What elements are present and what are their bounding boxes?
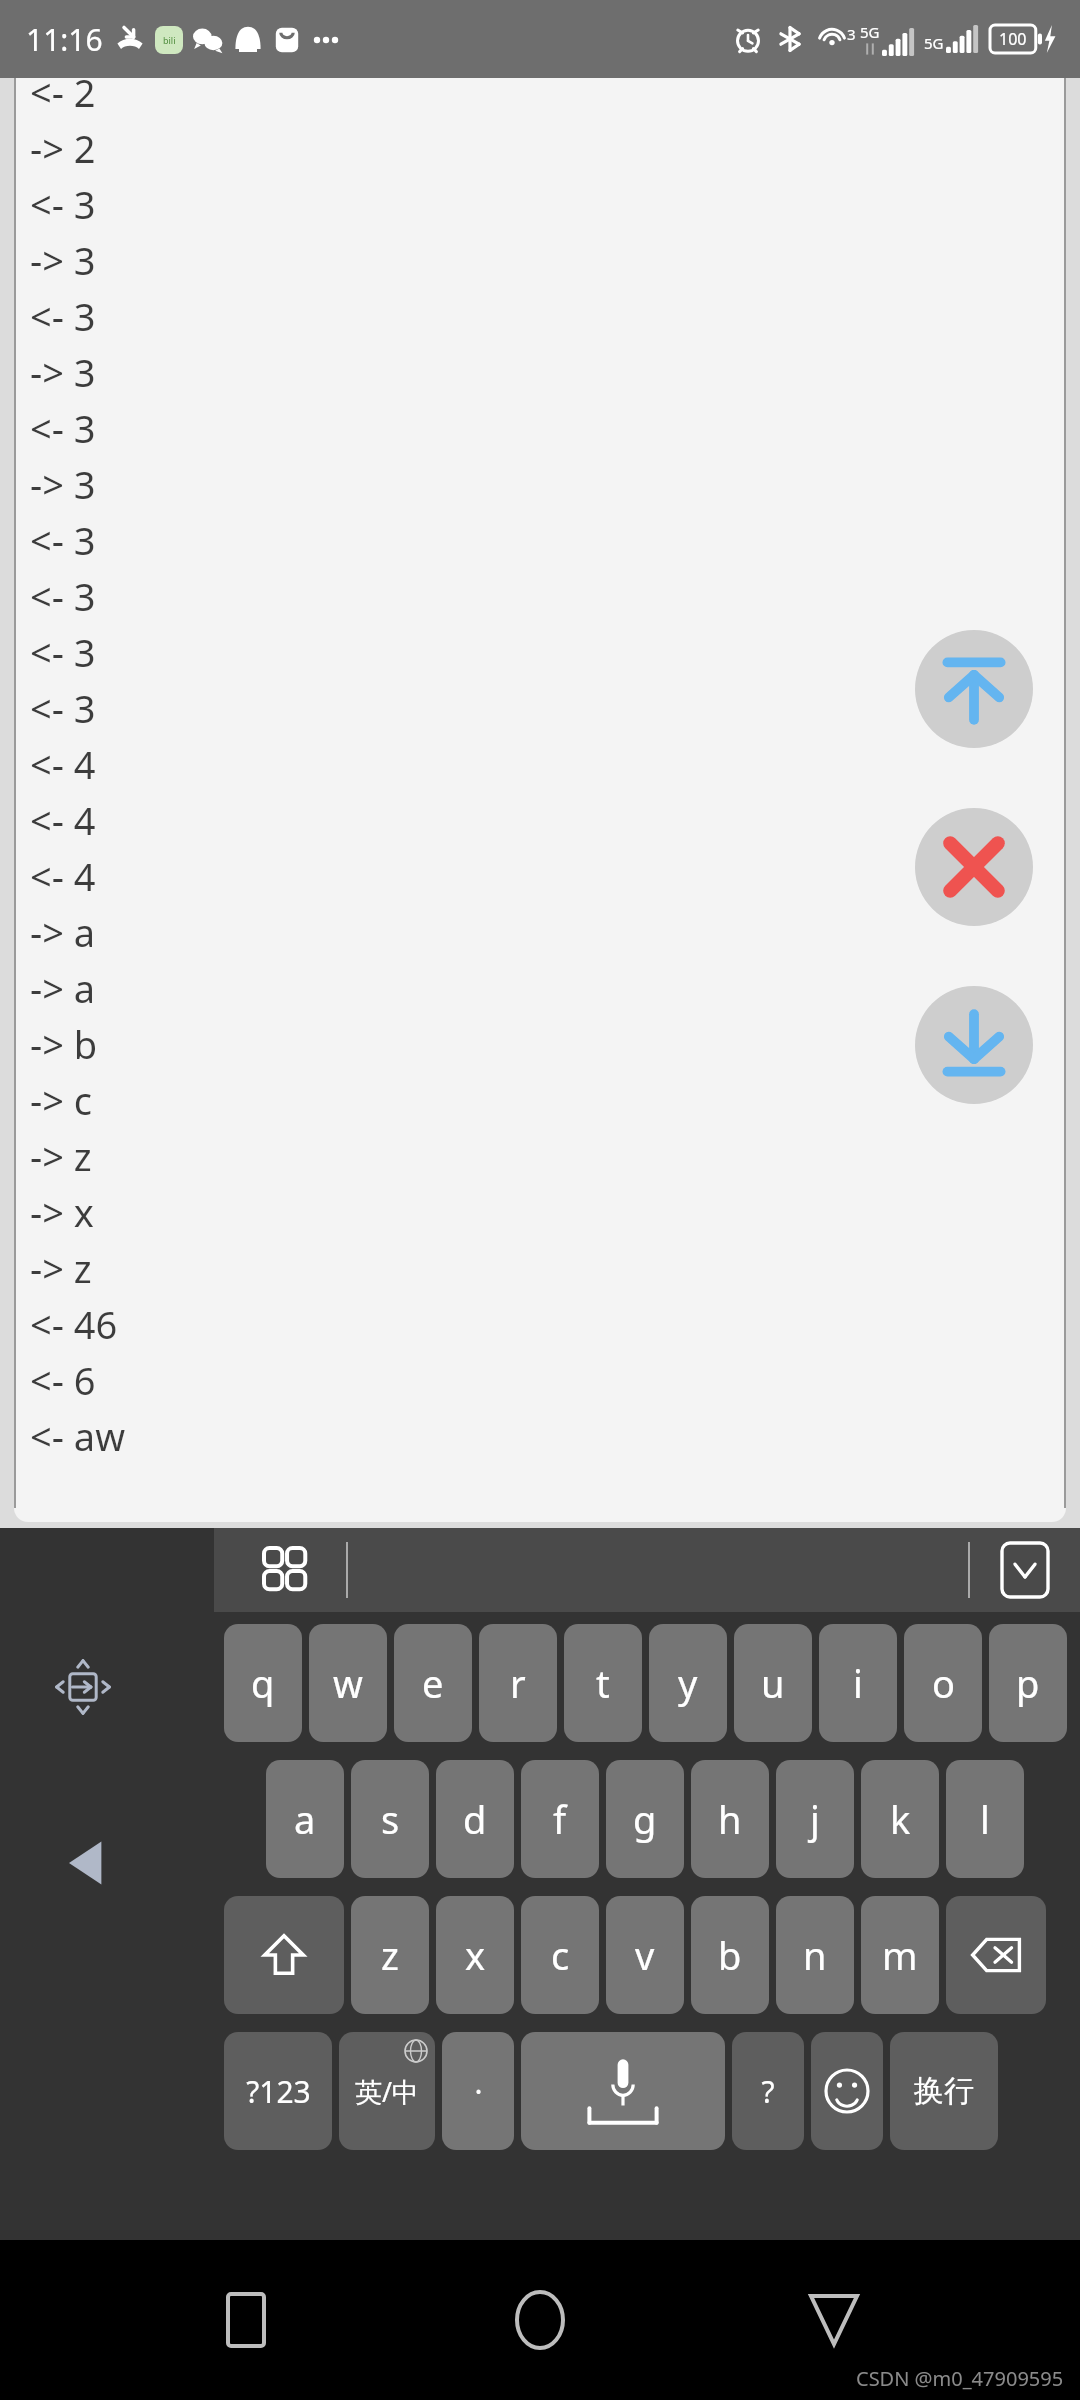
button[interactable]: c xyxy=(521,1896,599,2014)
staticText: 5G xyxy=(860,22,880,42)
staticText: <- 3 xyxy=(30,178,96,230)
staticText: q xyxy=(251,1657,275,1709)
staticText: m xyxy=(882,1929,918,1981)
button[interactable]: d xyxy=(436,1760,514,1878)
staticText: -> z xyxy=(30,1242,92,1294)
button[interactable]: e xyxy=(394,1624,472,1742)
staticText: 5G xyxy=(924,33,944,53)
staticText: <- 46 xyxy=(30,1298,118,1350)
button[interactable]: 换行 xyxy=(890,2032,998,2150)
button[interactable]: f xyxy=(521,1760,599,1878)
button[interactable]: i xyxy=(819,1624,897,1742)
button[interactable]: Shift xyxy=(224,1896,344,2014)
button[interactable]: Previous xyxy=(52,1828,122,1898)
staticText: <- 6 xyxy=(30,1354,96,1406)
staticText: bili xyxy=(163,34,176,46)
staticText: l xyxy=(980,1793,990,1845)
button[interactable]: r xyxy=(479,1624,557,1742)
staticText: d xyxy=(463,1793,487,1845)
button[interactable]: p xyxy=(989,1624,1067,1742)
button[interactable]: b xyxy=(691,1896,769,2014)
staticText: ? xyxy=(761,2071,775,2112)
staticText: a xyxy=(294,1793,316,1845)
button[interactable]: j xyxy=(776,1760,854,1878)
button[interactable]: Move keyboard xyxy=(48,1652,118,1722)
staticText: -> 3 xyxy=(30,458,96,510)
staticText: -> a xyxy=(30,906,96,958)
staticText: r xyxy=(510,1657,526,1709)
button[interactable]: a xyxy=(266,1760,344,1878)
staticText: <- aw xyxy=(30,1410,126,1462)
button[interactable]: Emoji xyxy=(811,2032,883,2150)
staticText: <- 2 xyxy=(30,78,96,118)
button[interactable]: n xyxy=(776,1896,854,2014)
button[interactable]: x xyxy=(436,1896,514,2014)
staticText: n xyxy=(803,1929,827,1981)
staticText: k xyxy=(890,1793,911,1845)
staticText: w xyxy=(333,1657,363,1709)
button[interactable]: z xyxy=(351,1896,429,2014)
staticText: -> c xyxy=(30,1074,93,1126)
button[interactable]: ?123 xyxy=(224,2032,332,2150)
staticText: y xyxy=(678,1657,698,1709)
button[interactable]: l xyxy=(946,1760,1024,1878)
button[interactable]: g xyxy=(606,1760,684,1878)
button[interactable]: Keyboard menu xyxy=(256,1540,316,1600)
button[interactable]: u xyxy=(734,1624,812,1742)
staticText: -> 3 xyxy=(30,346,96,398)
button[interactable]: y xyxy=(649,1624,727,1742)
button[interactable]: o xyxy=(904,1624,982,1742)
button[interactable]: Scroll to top xyxy=(915,630,1033,748)
staticText: 100 xyxy=(999,28,1027,50)
button[interactable]: t xyxy=(564,1624,642,1742)
staticText: <- 4 xyxy=(30,850,96,902)
staticText: -> a xyxy=(30,962,96,1014)
staticText: <- 4 xyxy=(30,738,96,790)
staticText: i xyxy=(853,1657,863,1709)
button[interactable]: Backspace xyxy=(946,1896,1046,2014)
staticText: 英/中 xyxy=(355,2073,420,2110)
staticText: · xyxy=(474,2071,483,2112)
button[interactable]: Recents xyxy=(198,2272,294,2368)
button[interactable]: v xyxy=(606,1896,684,2014)
staticText: <- 4 xyxy=(30,794,96,846)
staticText: x xyxy=(465,1929,486,1981)
staticText: 11:16 xyxy=(26,19,103,60)
staticText: -> x xyxy=(30,1186,94,1238)
button[interactable]: Home xyxy=(492,2272,588,2368)
staticText: g xyxy=(633,1793,657,1845)
staticText: <- 3 xyxy=(30,570,96,622)
button[interactable]: Scroll to bottom xyxy=(915,986,1033,1104)
staticText: u xyxy=(761,1657,785,1709)
staticText: o xyxy=(932,1657,955,1709)
button[interactable]: 英/中 xyxy=(339,2032,435,2150)
staticText: s xyxy=(381,1793,400,1845)
button[interactable]: Space xyxy=(521,2032,725,2150)
button[interactable]: Clear log xyxy=(915,808,1033,926)
staticText: t xyxy=(596,1657,610,1709)
staticText: CSDN @m0_47909595 xyxy=(856,2365,1064,2392)
staticText: -> 3 xyxy=(30,234,96,286)
staticText: f xyxy=(553,1793,567,1845)
button[interactable]: · xyxy=(442,2032,514,2150)
staticText: -> 2 xyxy=(30,122,96,174)
staticText: <- 3 xyxy=(30,626,96,678)
button[interactable]: s xyxy=(351,1760,429,1878)
button[interactable]: m xyxy=(861,1896,939,2014)
button[interactable]: k xyxy=(861,1760,939,1878)
staticText: -> b xyxy=(30,1018,98,1070)
staticText: p xyxy=(1016,1657,1040,1709)
button[interactable]: Back xyxy=(786,2272,882,2368)
staticText: <- 3 xyxy=(30,402,96,454)
staticText: -> z xyxy=(30,1130,92,1182)
button[interactable]: h xyxy=(691,1760,769,1878)
staticText: j xyxy=(810,1793,820,1845)
staticText: e xyxy=(422,1657,444,1709)
button[interactable]: ? xyxy=(732,2032,804,2150)
button[interactable]: Hide keyboard xyxy=(998,1540,1052,1600)
staticText: c xyxy=(551,1929,570,1981)
button[interactable]: q xyxy=(224,1624,302,1742)
button[interactable]: w xyxy=(309,1624,387,1742)
staticText: <- 3 xyxy=(30,682,96,734)
staticText: z xyxy=(381,1929,399,1981)
